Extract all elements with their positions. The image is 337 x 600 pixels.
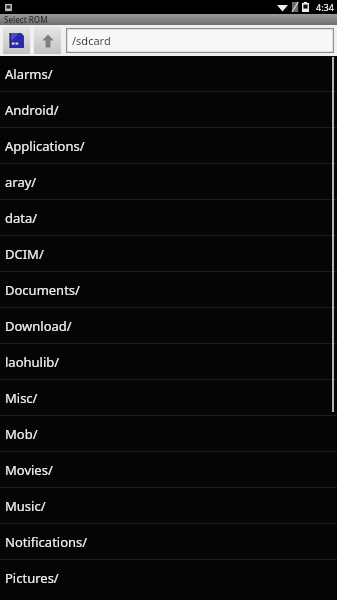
staticText: /sdcard	[72, 33, 111, 48]
staticText: DCIM/	[5, 245, 44, 263]
staticText: Misc/	[5, 389, 38, 407]
button[interactable]: Up one level	[34, 27, 61, 54]
staticText: Applications/	[5, 137, 85, 155]
button[interactable]: Misc/	[0, 380, 337, 416]
button[interactable]: Pictures/	[0, 560, 337, 596]
staticText: data/	[5, 209, 38, 227]
button[interactable]: laohulib/	[0, 344, 337, 380]
staticText: aray/	[5, 173, 37, 191]
staticText: Mob/	[5, 425, 38, 443]
button[interactable]: Music/	[0, 488, 337, 524]
button[interactable]: Applications/	[0, 128, 337, 164]
button[interactable]: data/	[0, 200, 337, 236]
staticText: Download/	[5, 317, 72, 335]
button[interactable]: Android/	[0, 92, 337, 128]
staticText: laohulib/	[5, 353, 60, 371]
staticText: Movies/	[5, 461, 53, 479]
button[interactable]: DCIM/	[0, 236, 337, 272]
button[interactable]: Download/	[0, 308, 337, 344]
staticText: Music/	[5, 497, 46, 515]
staticText: Select ROM	[4, 14, 48, 25]
button[interactable]: Documents/	[0, 272, 337, 308]
button[interactable]: Alarms/	[0, 56, 337, 92]
button[interactable]: Storage	[3, 27, 30, 54]
button[interactable]: Mob/	[0, 416, 337, 452]
staticText: Alarms/	[5, 65, 53, 83]
button[interactable]: Notifications/	[0, 524, 337, 560]
staticText: Notifications/	[5, 533, 88, 551]
staticText: Android/	[5, 101, 59, 119]
button[interactable]: Movies/	[0, 452, 337, 488]
staticText: 4:34	[316, 1, 334, 13]
staticText: Pictures/	[5, 569, 59, 587]
button[interactable]: /sdcard	[66, 28, 334, 53]
staticText: Documents/	[5, 281, 80, 299]
button[interactable]: aray/	[0, 164, 337, 200]
